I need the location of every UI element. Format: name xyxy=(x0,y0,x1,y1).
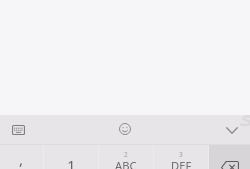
button[interactable]: Change keyboard layout xyxy=(0,115,37,144)
button[interactable]: Backspace xyxy=(209,145,250,169)
button[interactable]: Hide keyboard xyxy=(213,115,250,144)
button[interactable]: , xyxy=(0,145,43,169)
staticText: ABC xyxy=(115,158,137,169)
button[interactable]: 3 xyxy=(154,145,208,169)
staticText: 3 xyxy=(179,150,183,159)
staticText: 1 xyxy=(67,155,76,169)
staticText: , xyxy=(19,149,24,169)
staticText: 2 xyxy=(124,150,128,159)
button[interactable]: 2 xyxy=(99,145,153,169)
button[interactable]: Emoji xyxy=(106,115,143,144)
button[interactable]: 1 xyxy=(44,145,98,169)
staticText: DEF xyxy=(171,158,192,169)
